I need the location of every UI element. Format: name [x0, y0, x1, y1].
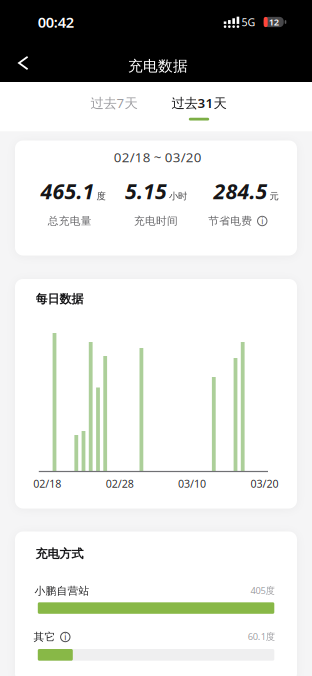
staticText: 充电时间 — [134, 214, 178, 227]
staticText: 小时 — [169, 190, 187, 202]
staticText: 每日数据 — [36, 292, 84, 306]
staticText: 总充电量 — [48, 214, 92, 227]
button[interactable]: 详情 — [257, 216, 268, 226]
staticText: 元 — [269, 190, 278, 202]
staticText: 其它 — [34, 630, 56, 643]
staticText: 02/18 — [33, 476, 61, 491]
staticText: 过去31天 — [171, 94, 226, 112]
staticText: i — [64, 632, 66, 642]
staticText: 过去7天 — [90, 94, 137, 112]
staticText: 节省电费 — [208, 214, 252, 227]
staticText: 充电数据 — [128, 57, 188, 75]
staticText: 小鹏自营站 — [35, 584, 90, 597]
button[interactable]: 过去31天 — [149, 88, 249, 121]
staticText: 03/10 — [178, 476, 206, 491]
staticText: 02/28 — [106, 476, 134, 491]
staticText: 5.15 — [125, 177, 167, 205]
staticText: 405度 — [250, 584, 274, 596]
staticText: 度 — [96, 190, 105, 202]
staticText: 00:42 — [38, 12, 74, 32]
staticText: i — [261, 216, 263, 226]
staticText: 03/20 — [250, 476, 278, 491]
button[interactable]: 详情 — [60, 632, 71, 642]
staticText: 充电方式 — [36, 546, 84, 561]
staticText: 12 — [269, 16, 279, 28]
staticText: 60.1度 — [248, 630, 275, 642]
button[interactable]: Back — [0, 44, 42, 82]
staticText: 5G — [241, 15, 255, 29]
staticText: 465.1 — [40, 177, 94, 205]
staticText: 02/18 ~ 03/20 — [114, 148, 202, 166]
staticText: 284.5 — [213, 177, 267, 205]
button[interactable]: 过去7天 — [64, 88, 164, 118]
